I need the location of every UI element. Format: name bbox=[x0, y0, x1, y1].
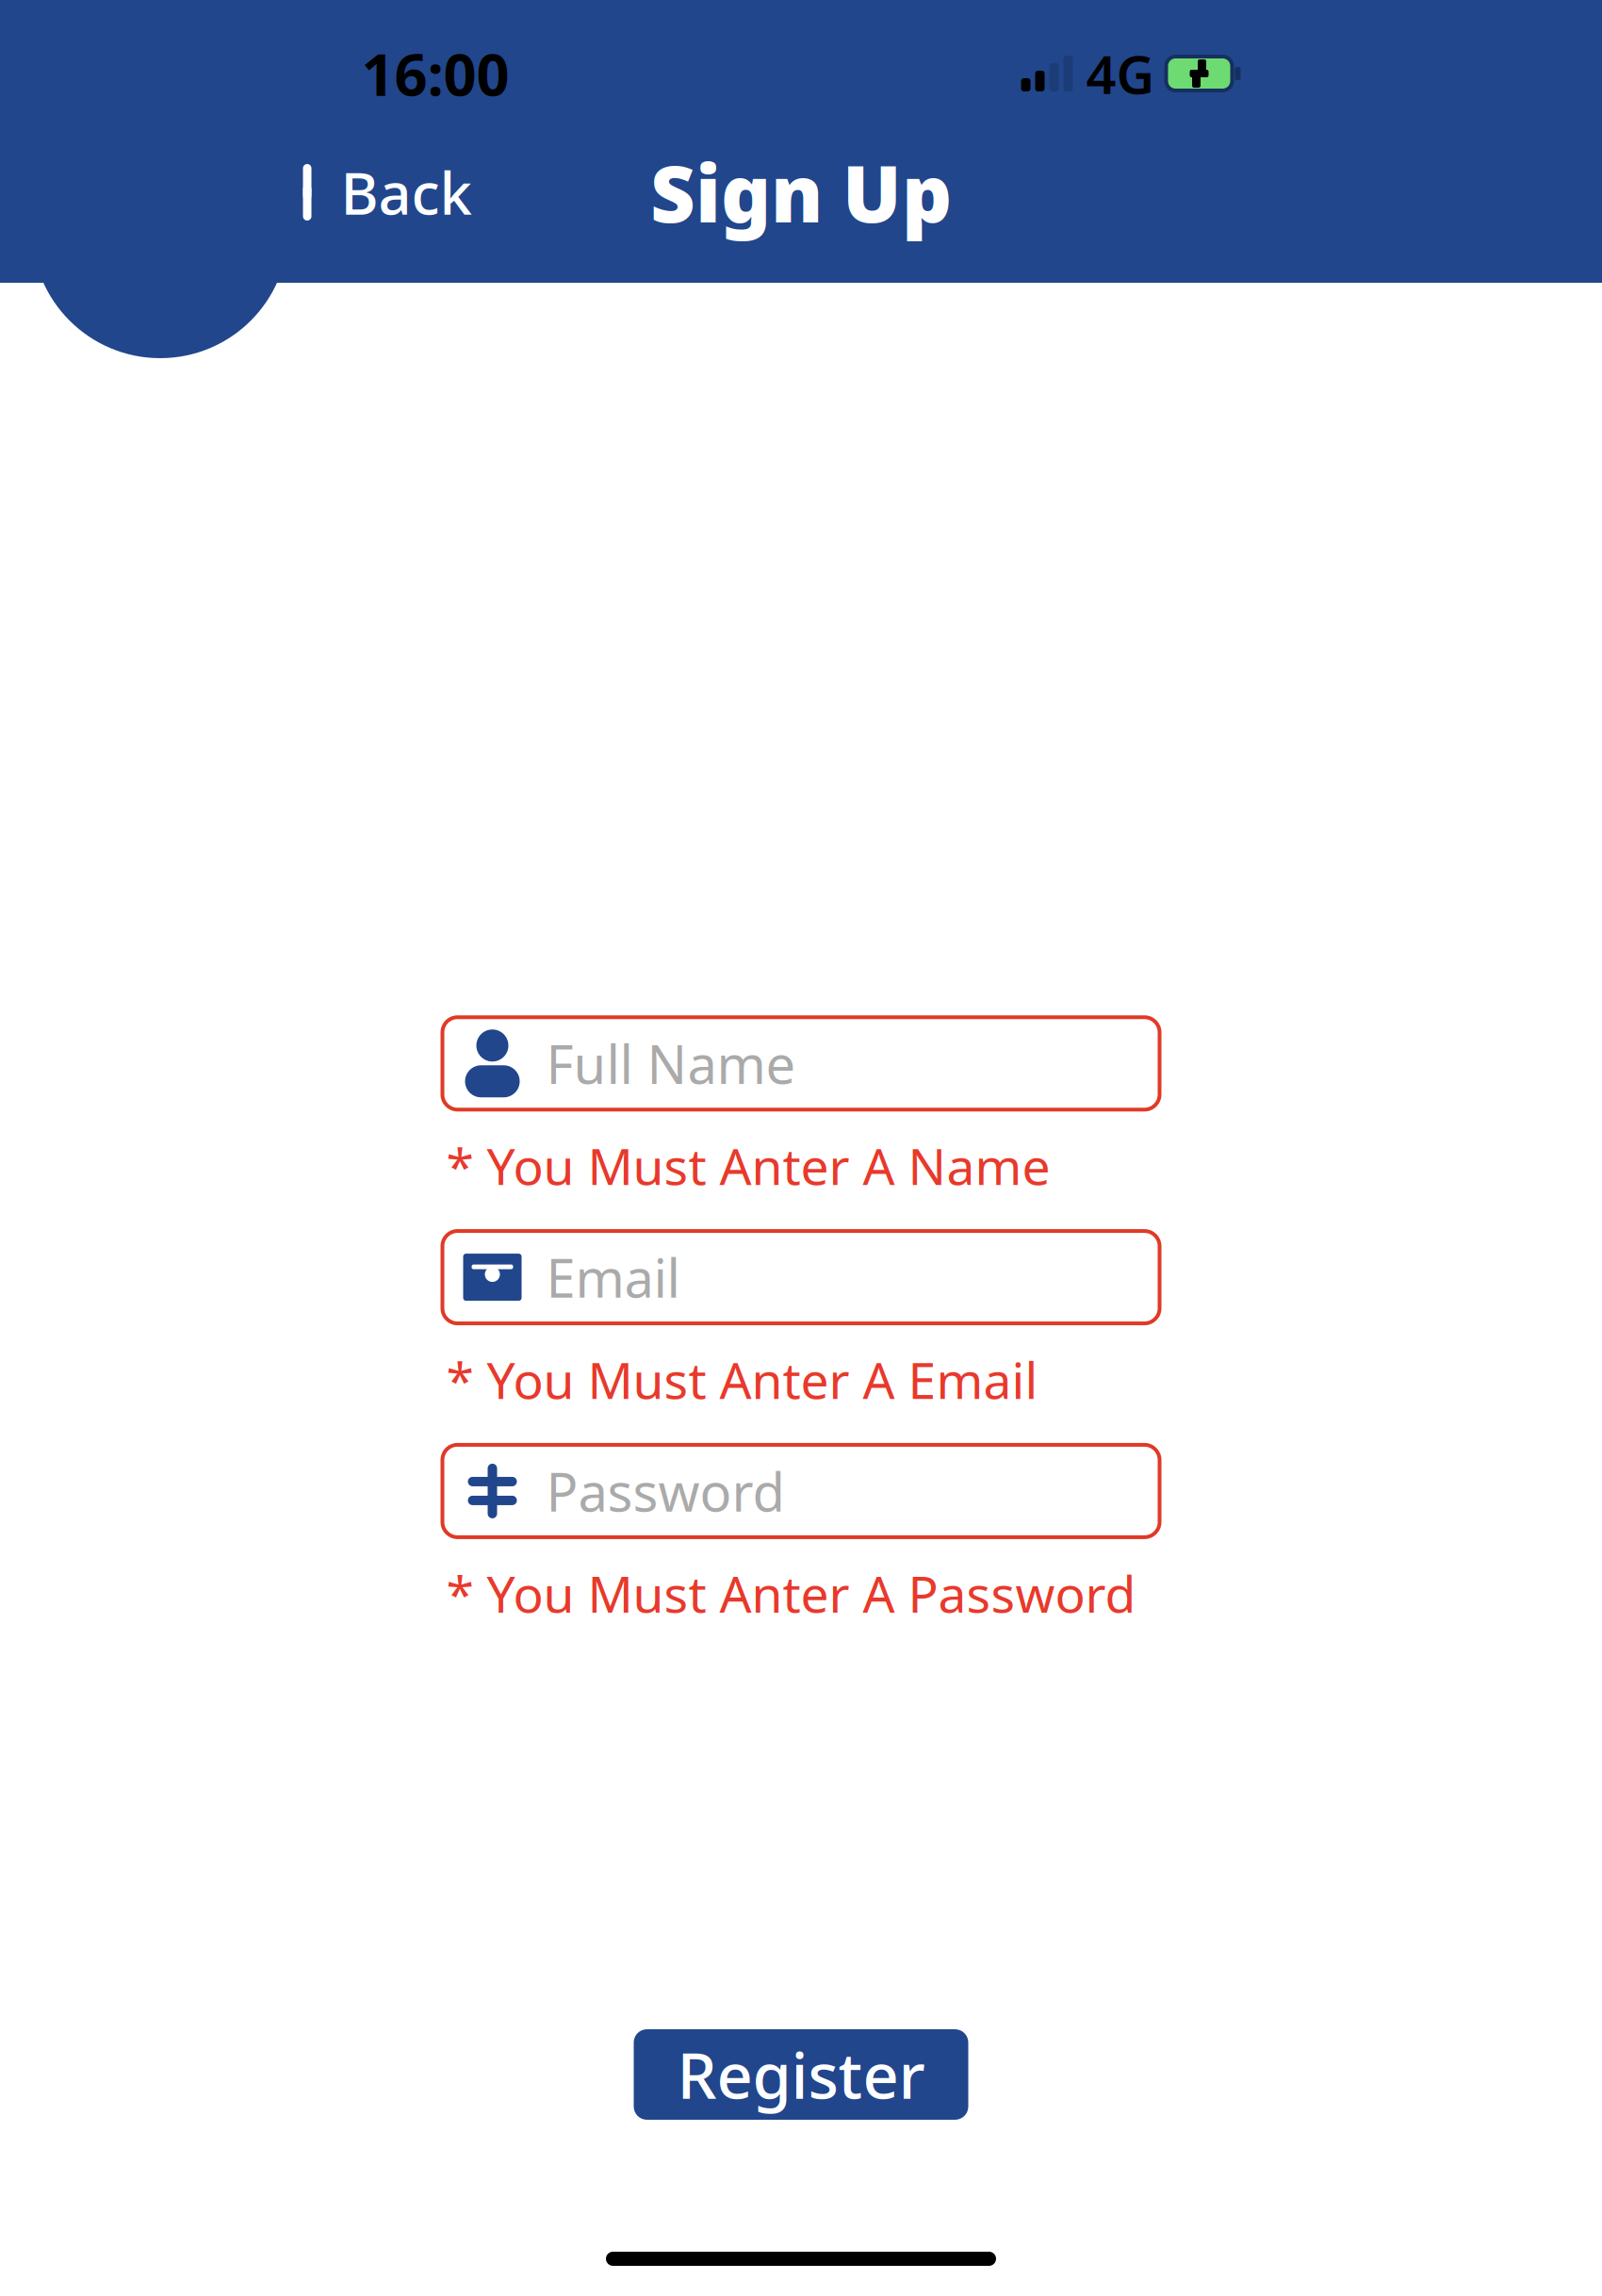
staticText: Back bbox=[341, 154, 472, 231]
button[interactable]: Password bbox=[442, 1445, 1160, 1537]
staticText: * You Must Anter A Password bbox=[446, 1560, 1136, 1627]
staticText: Full Name bbox=[546, 1028, 796, 1099]
button[interactable]: Email bbox=[442, 1231, 1160, 1323]
staticText: Register bbox=[677, 2033, 925, 2116]
button[interactable]: Full Name bbox=[442, 1017, 1160, 1110]
staticText: 4G bbox=[1086, 38, 1155, 109]
staticText: Sign Up bbox=[650, 141, 952, 244]
staticText: 16:00 bbox=[361, 35, 509, 112]
staticText: Email bbox=[546, 1242, 680, 1312]
button[interactable]: Register bbox=[634, 2029, 968, 2120]
button[interactable]: Back bbox=[271, 149, 496, 236]
staticText: Password bbox=[546, 1456, 785, 1526]
staticText: * You Must Anter A Email bbox=[446, 1346, 1038, 1413]
staticText: * You Must Anter A Name bbox=[446, 1132, 1050, 1199]
